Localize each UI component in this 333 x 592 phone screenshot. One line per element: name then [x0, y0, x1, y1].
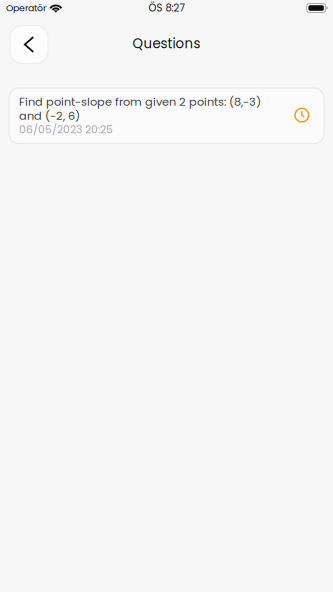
- staticText: ÖS 8:27: [148, 1, 184, 15]
- button[interactable]: Find point-slope from given 2 points: (8…: [9, 88, 324, 144]
- staticText: Find point-slope from given 2 points: (8…: [19, 94, 261, 110]
- button[interactable]: Back: [10, 25, 48, 63]
- staticText: Operatör: [6, 1, 46, 15]
- staticText: and (-2, 6): [19, 108, 80, 124]
- staticText: Questions: [132, 34, 200, 53]
- staticText: 06/05/2023 20:25: [19, 122, 113, 137]
